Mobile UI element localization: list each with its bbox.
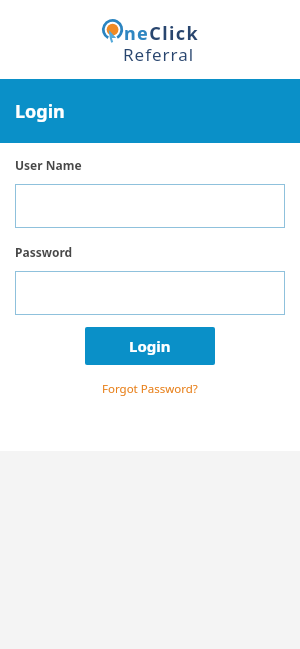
button[interactable] xyxy=(15,184,285,228)
staticText: Referral xyxy=(123,43,195,66)
staticText: neClick xyxy=(124,21,199,46)
button[interactable] xyxy=(15,271,285,315)
staticText: Password xyxy=(15,244,73,260)
staticText: Login xyxy=(129,336,171,356)
staticText: Login xyxy=(15,99,65,124)
button[interactable]: Login xyxy=(85,327,215,365)
staticText: User Name xyxy=(15,157,82,173)
button[interactable]: Forgot Password? xyxy=(102,381,198,397)
